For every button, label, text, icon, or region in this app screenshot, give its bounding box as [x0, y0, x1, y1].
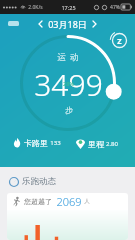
staticText: 28%	[63, 80, 74, 87]
staticText: 3499	[34, 64, 103, 105]
button[interactable]: 运 动	[20, 35, 116, 131]
staticText: 03月18日	[48, 18, 87, 30]
button[interactable]: 您超越了	[7, 193, 128, 240]
button[interactable]: Previous day	[34, 17, 47, 30]
staticText: 17:25	[61, 4, 76, 11]
staticText: 您超越了	[24, 197, 52, 206]
button[interactable]: Next day	[88, 17, 101, 30]
staticText: 里程	[88, 139, 104, 149]
button[interactable]: 里程	[76, 138, 118, 149]
staticText: Z	[117, 36, 122, 46]
button[interactable]: 卡路里	[13, 138, 61, 148]
staticText: 乐跑动态	[22, 176, 56, 187]
staticText: 2.0K/s	[28, 4, 43, 11]
button[interactable]: 乐跑动态	[9, 176, 135, 187]
staticText: 步	[65, 105, 73, 115]
staticText: 运 动	[57, 51, 80, 63]
staticText: 2.80	[106, 140, 118, 148]
staticText: 卡路里	[24, 138, 48, 148]
staticText: 2069	[56, 194, 82, 209]
staticText: 133	[50, 139, 61, 147]
staticText: 47%	[110, 4, 120, 11]
staticText: 人	[84, 198, 90, 205]
button[interactable]: Sleep	[111, 32, 128, 49]
button[interactable]: Menu	[5, 16, 21, 30]
